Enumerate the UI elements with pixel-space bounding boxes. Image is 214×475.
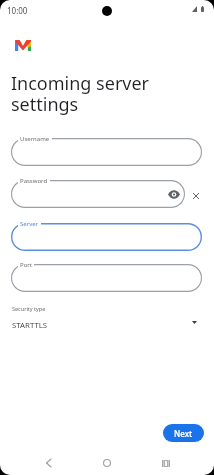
- staticText: Incoming server: [11, 71, 150, 96]
- staticText: Security type: [12, 305, 46, 312]
- staticText: Username: [20, 135, 50, 143]
- staticText: Password: [20, 177, 48, 185]
- button[interactable]: Security type: [0, 303, 214, 335]
- button[interactable]: Back: [38, 453, 58, 473]
- button[interactable]: Recent apps: [156, 453, 176, 473]
- staticText: Port: [20, 261, 32, 269]
- button[interactable]: Port: [11, 264, 202, 292]
- button[interactable]: Username: [11, 138, 202, 166]
- staticText: Server: [20, 220, 39, 228]
- button[interactable]: Clear password: [188, 188, 204, 204]
- staticText: Next: [174, 428, 193, 439]
- staticText: settings: [11, 92, 79, 117]
- staticText: STARTTLS: [12, 320, 48, 331]
- button[interactable]: Show password: [166, 187, 182, 201]
- button[interactable]: Password: [11, 180, 185, 208]
- staticText: 10:00: [7, 5, 28, 16]
- button[interactable]: Next: [163, 424, 204, 442]
- button[interactable]: Server: [11, 223, 202, 251]
- button[interactable]: Home: [97, 453, 117, 473]
